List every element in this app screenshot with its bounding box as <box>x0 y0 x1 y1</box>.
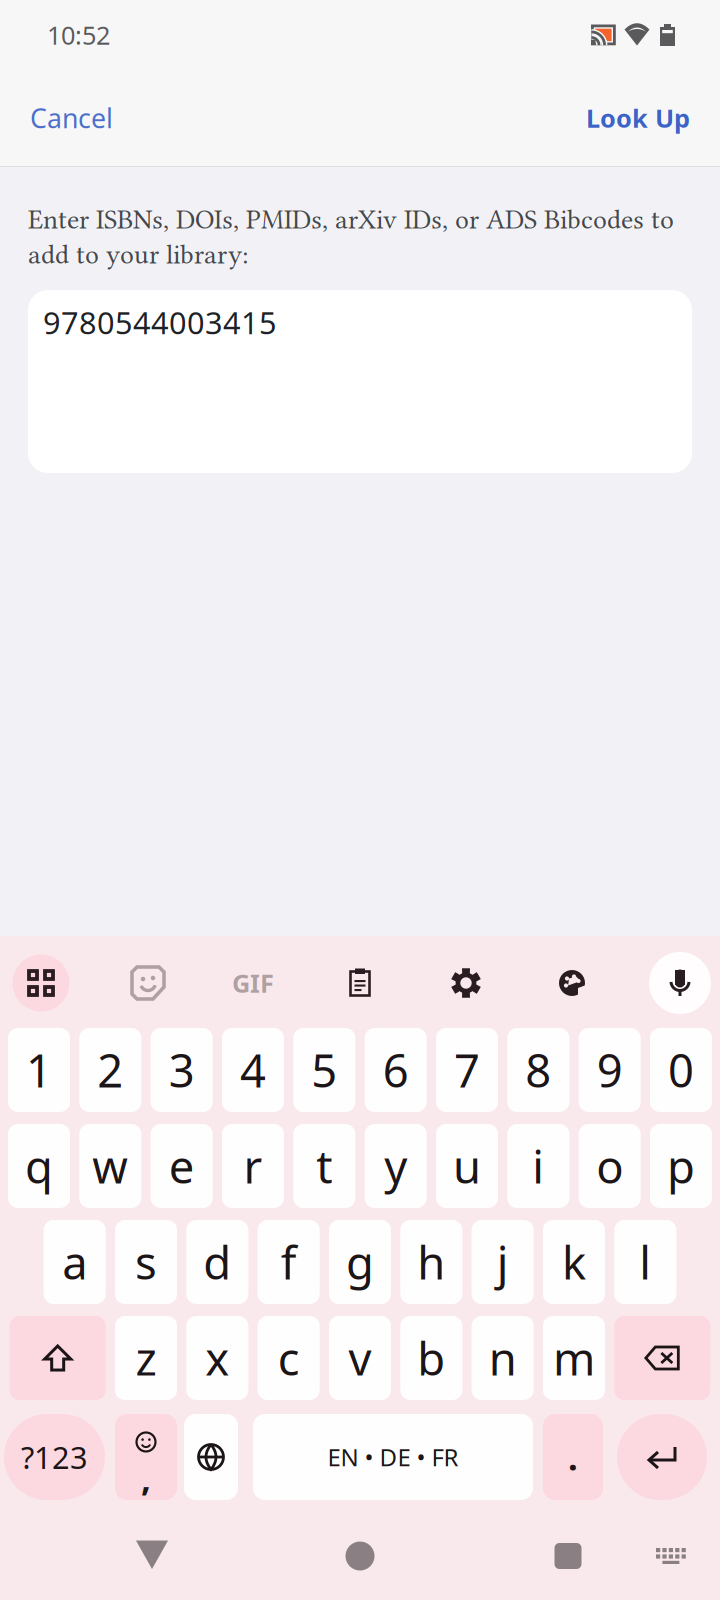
staticText: r <box>243 1136 262 1196</box>
button[interactable]: t <box>293 1124 355 1208</box>
staticText: g <box>346 1232 374 1292</box>
button[interactable]: 5 <box>293 1028 355 1112</box>
button[interactable]: k <box>543 1220 605 1304</box>
staticText: i <box>532 1136 544 1196</box>
staticText: 9 <box>597 1040 623 1100</box>
button[interactable]: y <box>365 1124 427 1208</box>
button[interactable]: c <box>258 1316 320 1400</box>
staticText: w <box>92 1136 128 1196</box>
staticText: 9780544003415 <box>43 302 277 343</box>
staticText: l <box>639 1232 651 1292</box>
button[interactable]: g <box>329 1220 391 1304</box>
staticText: . <box>568 1434 578 1480</box>
button[interactable]: 9 <box>579 1028 641 1112</box>
button[interactable]: i <box>507 1124 569 1208</box>
staticText: Enter ISBNs, DOIs, PMIDs, arXiv IDs, or … <box>28 204 674 235</box>
button[interactable]: Backspace <box>614 1316 710 1400</box>
staticText: n <box>489 1328 517 1388</box>
staticText: Look Up <box>586 101 690 135</box>
button[interactable]: 2 <box>79 1028 141 1112</box>
staticText: c <box>278 1328 300 1388</box>
staticText: y <box>384 1136 407 1196</box>
staticText: v <box>348 1328 371 1388</box>
button[interactable]: Change language <box>184 1414 238 1500</box>
button[interactable]: q <box>8 1124 70 1208</box>
button[interactable]: e <box>151 1124 213 1208</box>
button[interactable]: f <box>258 1220 320 1304</box>
button[interactable]: 6 <box>365 1028 427 1112</box>
button[interactable]: 3 <box>151 1028 213 1112</box>
button[interactable]: Cancel <box>16 90 127 146</box>
staticText: f <box>281 1232 297 1292</box>
staticText: EN • DE • FR <box>327 1441 458 1473</box>
button[interactable]: Voice input <box>643 938 717 1028</box>
button[interactable]: j <box>472 1220 534 1304</box>
button[interactable]: h <box>400 1220 462 1304</box>
button[interactable]: p <box>650 1124 712 1208</box>
button[interactable]: x <box>186 1316 248 1400</box>
button[interactable]: GIF <box>216 938 290 1028</box>
staticText: 0 <box>668 1040 694 1100</box>
button[interactable]: o <box>579 1124 641 1208</box>
staticText: x <box>205 1328 229 1388</box>
button[interactable]: z <box>115 1316 177 1400</box>
button[interactable]: Enter <box>617 1414 707 1500</box>
staticText: s <box>135 1232 157 1292</box>
button[interactable]: m <box>543 1316 605 1400</box>
staticText: b <box>417 1328 445 1388</box>
button[interactable]: Clipboard <box>323 938 397 1028</box>
button[interactable]: a <box>44 1220 106 1304</box>
button[interactable]: 8 <box>507 1028 569 1112</box>
button[interactable]: Look Up <box>572 91 704 145</box>
button[interactable]: . <box>543 1414 603 1500</box>
button[interactable]: d <box>186 1220 248 1304</box>
button[interactable]: b <box>400 1316 462 1400</box>
button[interactable]: Theme <box>535 938 609 1028</box>
button[interactable]: Keyboard modes <box>4 938 78 1028</box>
button[interactable]: n <box>472 1316 534 1400</box>
button[interactable]: l <box>614 1220 676 1304</box>
staticText: k <box>562 1232 586 1292</box>
button[interactable]: Emoji <box>115 1414 177 1500</box>
button[interactable]: Recents <box>528 1516 608 1596</box>
staticText: 10:52 <box>47 18 110 52</box>
button[interactable]: 7 <box>436 1028 498 1112</box>
button[interactable]: ?123 <box>4 1414 105 1500</box>
staticText: d <box>203 1232 231 1292</box>
button[interactable]: 4 <box>222 1028 284 1112</box>
staticText: 4 <box>240 1040 266 1100</box>
staticText: 8 <box>525 1040 551 1100</box>
staticText: , <box>141 1455 151 1501</box>
staticText: u <box>453 1136 481 1196</box>
staticText: 2 <box>97 1040 123 1100</box>
staticText: Cancel <box>30 100 113 136</box>
staticText: 1 <box>26 1040 52 1100</box>
staticText: j <box>497 1232 509 1292</box>
staticText: 5 <box>311 1040 337 1100</box>
staticText: 7 <box>454 1040 480 1100</box>
button[interactable]: EN • DE • FR <box>253 1414 533 1500</box>
button[interactable]: s <box>115 1220 177 1304</box>
button[interactable]: Settings <box>429 938 503 1028</box>
staticText: t <box>316 1136 332 1196</box>
staticText: add to your library: <box>28 239 249 270</box>
staticText: q <box>25 1136 53 1196</box>
staticText: 6 <box>383 1040 409 1100</box>
staticText: m <box>553 1328 595 1388</box>
button[interactable]: u <box>436 1124 498 1208</box>
button[interactable]: 0 <box>650 1028 712 1112</box>
button[interactable]: w <box>79 1124 141 1208</box>
button[interactable]: Home <box>320 1516 400 1596</box>
button[interactable]: v <box>329 1316 391 1400</box>
button[interactable]: Stickers <box>111 938 185 1028</box>
staticText: a <box>62 1232 87 1292</box>
button[interactable]: Hide keyboard <box>641 1526 701 1586</box>
button[interactable]: 1 <box>8 1028 70 1112</box>
button[interactable]: Back <box>112 1514 192 1594</box>
staticText: ?123 <box>21 1437 88 1477</box>
button[interactable]: Shift <box>10 1316 106 1400</box>
staticText: z <box>135 1328 156 1388</box>
staticText: p <box>667 1136 695 1196</box>
button[interactable]: r <box>222 1124 284 1208</box>
staticText: o <box>596 1136 623 1196</box>
